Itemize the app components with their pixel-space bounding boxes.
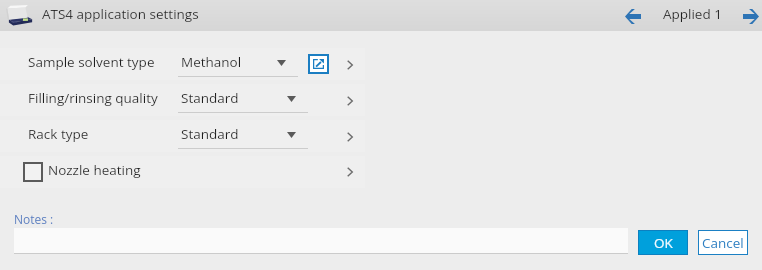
staticText: Standard xyxy=(181,125,239,143)
button[interactable] xyxy=(14,228,628,254)
staticText: Rack type xyxy=(28,125,89,143)
button[interactable]: Standard xyxy=(178,83,308,114)
button[interactable]: More options xyxy=(339,126,360,147)
button[interactable]: Cancel xyxy=(698,230,748,255)
button[interactable]: Open solvent settings xyxy=(308,54,329,74)
staticText: Applied 1 xyxy=(663,5,722,23)
button[interactable]: More options xyxy=(339,54,360,75)
staticText: Cancel xyxy=(702,234,744,252)
staticText: Nozzle heating xyxy=(48,161,141,179)
staticText: ATS4 application settings xyxy=(42,5,199,23)
staticText: Standard xyxy=(181,89,239,107)
button[interactable]: Nozzle heating details xyxy=(339,161,360,182)
button[interactable]: Next xyxy=(739,4,762,28)
button[interactable]: Methanol xyxy=(178,47,298,78)
button[interactable]: OK xyxy=(638,230,688,255)
button[interactable] xyxy=(23,162,43,182)
button[interactable]: Previous xyxy=(621,4,645,28)
staticText: Methanol xyxy=(181,53,242,71)
staticText: Notes : xyxy=(14,211,54,227)
staticText: OK xyxy=(654,234,673,252)
button[interactable]: More options xyxy=(339,90,360,111)
staticText: Sample solvent type xyxy=(28,53,155,71)
button[interactable]: Standard xyxy=(178,119,308,150)
staticText: Filling/rinsing quality xyxy=(28,89,158,107)
